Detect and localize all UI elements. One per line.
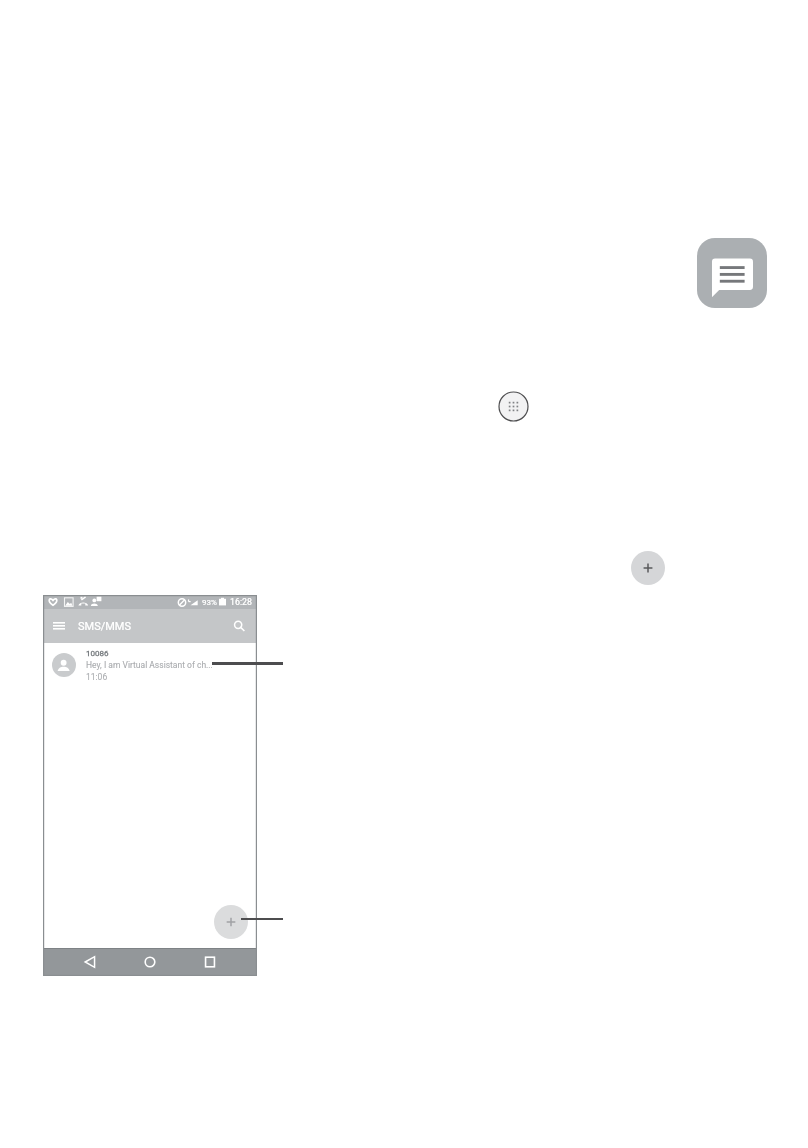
staticText: SMS/MMS (78, 620, 131, 633)
button[interactable]: New conversation (214, 905, 248, 939)
button[interactable]: Home (137, 949, 163, 975)
staticText: 11:06 (86, 672, 108, 682)
staticText: 16:28 (230, 597, 252, 607)
staticText: 93% (202, 598, 217, 607)
button[interactable]: New message (631, 551, 665, 585)
staticText: 10086 (86, 649, 109, 658)
button[interactable]: Messages app icon (697, 238, 767, 308)
button[interactable]: Recents (197, 949, 223, 975)
button[interactable]: Search (230, 617, 248, 635)
button[interactable]: Back (77, 949, 103, 975)
button[interactable]: 10086 (43, 643, 257, 687)
button[interactable]: All apps (498, 391, 529, 422)
staticText: Hey, I am Virtual Assistant of ch... (86, 660, 213, 670)
button[interactable]: Menu (51, 618, 67, 634)
